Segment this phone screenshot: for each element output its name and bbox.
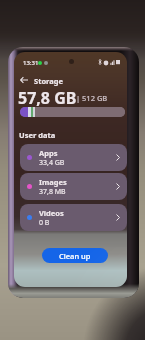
staticText: Storage <box>34 76 63 86</box>
staticText: | 512 GB <box>76 93 108 103</box>
button[interactable]: Back <box>16 72 32 88</box>
button[interactable]: Videos <box>20 204 127 231</box>
staticText: 0 B <box>39 218 50 228</box>
staticText: User data <box>19 130 56 140</box>
staticText: Apps <box>39 148 58 158</box>
staticText: 33,4 GB <box>39 158 65 168</box>
staticText: Videos <box>39 208 64 218</box>
staticText: 57,8 GB <box>18 87 77 109</box>
button[interactable]: Images <box>20 173 127 200</box>
button[interactable]: Clean up <box>42 248 108 263</box>
staticText: Images <box>39 177 67 187</box>
staticText: 13:31 <box>23 59 39 67</box>
staticText: 37,8 MB <box>39 187 66 197</box>
staticText: Clean up <box>59 251 91 261</box>
button[interactable]: Apps <box>20 144 127 171</box>
